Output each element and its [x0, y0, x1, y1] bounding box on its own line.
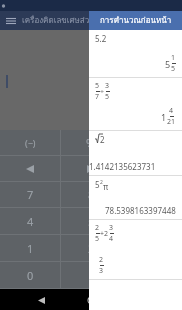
button[interactable]: 1 — [0, 235, 60, 261]
staticText: 5 — [105, 92, 110, 102]
button[interactable]: 6 — [122, 208, 182, 234]
button[interactable]: Home — [82, 291, 100, 309]
button[interactable] — [61, 156, 121, 181]
staticText: × — [149, 268, 156, 283]
staticText: 1 — [171, 53, 176, 63]
staticText: 5 — [171, 64, 176, 74]
staticText: 2 — [95, 223, 100, 233]
staticText: 8 — [88, 187, 95, 202]
staticText: 5.2 — [95, 33, 107, 44]
button[interactable]: 2 — [61, 235, 121, 261]
staticText: (−) — [25, 137, 36, 149]
staticText: การคำนวณก่อนหน้า — [100, 14, 172, 27]
staticText: 1 — [27, 241, 34, 256]
staticText: 5 — [95, 81, 100, 91]
button[interactable]: การคำนวณก่อนหน้า — [89, 11, 182, 30]
button[interactable] — [0, 156, 60, 181]
staticText: . — [90, 268, 93, 283]
staticText: 0 — [27, 268, 34, 283]
staticText: % — [86, 135, 96, 150]
staticText: 5 — [165, 58, 171, 70]
staticText: 4 — [169, 106, 174, 116]
button[interactable] — [122, 130, 182, 155]
staticText: +2 — [100, 229, 109, 239]
button[interactable]: 5 — [89, 78, 182, 131]
button[interactable]: Back — [32, 291, 50, 309]
staticText: 3 — [105, 81, 110, 91]
button[interactable]: % — [61, 130, 121, 155]
staticText: 4 — [109, 234, 114, 244]
button[interactable]: 0 — [0, 262, 60, 288]
staticText: 1.4142135623731 — [89, 161, 176, 172]
staticText: 78.5398163397448 — [105, 205, 176, 216]
button[interactable] — [122, 156, 182, 181]
staticText: 5 — [88, 214, 95, 229]
button[interactable]: × — [122, 262, 182, 288]
staticText: 5 — [95, 234, 100, 244]
button[interactable]: 2 — [89, 220, 182, 280]
staticText: 3 — [109, 223, 114, 233]
button[interactable]: 5 — [89, 176, 182, 220]
staticText: 2 — [100, 134, 105, 145]
button[interactable]: 7 — [0, 182, 60, 207]
staticText: 21 — [167, 117, 176, 127]
button[interactable]: Open navigation drawer — [4, 14, 18, 28]
staticText: 2 — [99, 255, 104, 265]
staticText: 2 — [100, 179, 103, 186]
button[interactable]: . — [61, 262, 121, 288]
staticText: 7 — [27, 187, 34, 202]
staticText: เครื่องคิดเลขเศษส่วน — [22, 14, 95, 27]
staticText: ÷ — [100, 87, 105, 97]
staticText: π — [103, 181, 109, 192]
staticText: 3 — [99, 266, 104, 276]
button[interactable]: 2 — [89, 131, 182, 176]
staticText: 1 — [161, 111, 167, 123]
staticText: 2 — [88, 241, 95, 256]
button[interactable]: 4 — [0, 208, 60, 234]
button[interactable]: 8 — [61, 182, 121, 207]
button[interactable]: 5 — [61, 208, 121, 234]
staticText: 6 — [149, 214, 156, 229]
staticText: 7 — [95, 92, 100, 102]
button[interactable]: (−) — [0, 130, 60, 155]
staticText: 4 — [27, 214, 34, 229]
staticText: 5 — [95, 179, 100, 190]
button[interactable]: 5.2 — [89, 30, 182, 78]
